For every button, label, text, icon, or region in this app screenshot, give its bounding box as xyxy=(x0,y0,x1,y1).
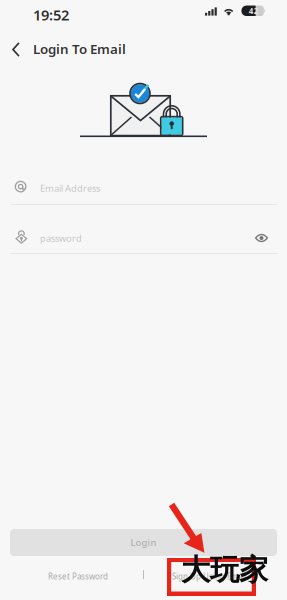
button[interactable]: Show password xyxy=(247,225,276,251)
button[interactable]: Sign Up Using Email xyxy=(162,565,256,588)
staticText: Login To Email xyxy=(33,40,126,58)
staticText: Email Address xyxy=(40,182,100,194)
button[interactable]: Back xyxy=(1,33,31,66)
button[interactable]: Reset Password xyxy=(38,565,118,588)
button[interactable]: Login xyxy=(10,529,277,556)
staticText: password xyxy=(40,232,82,244)
staticText: Login xyxy=(130,536,156,549)
staticText: Reset Password xyxy=(48,571,108,582)
staticText: 42 xyxy=(249,5,259,16)
staticText: 大玩家 xyxy=(181,552,268,588)
staticText: 19:52 xyxy=(33,5,69,24)
staticText: Sign Up Using Email xyxy=(172,571,246,582)
